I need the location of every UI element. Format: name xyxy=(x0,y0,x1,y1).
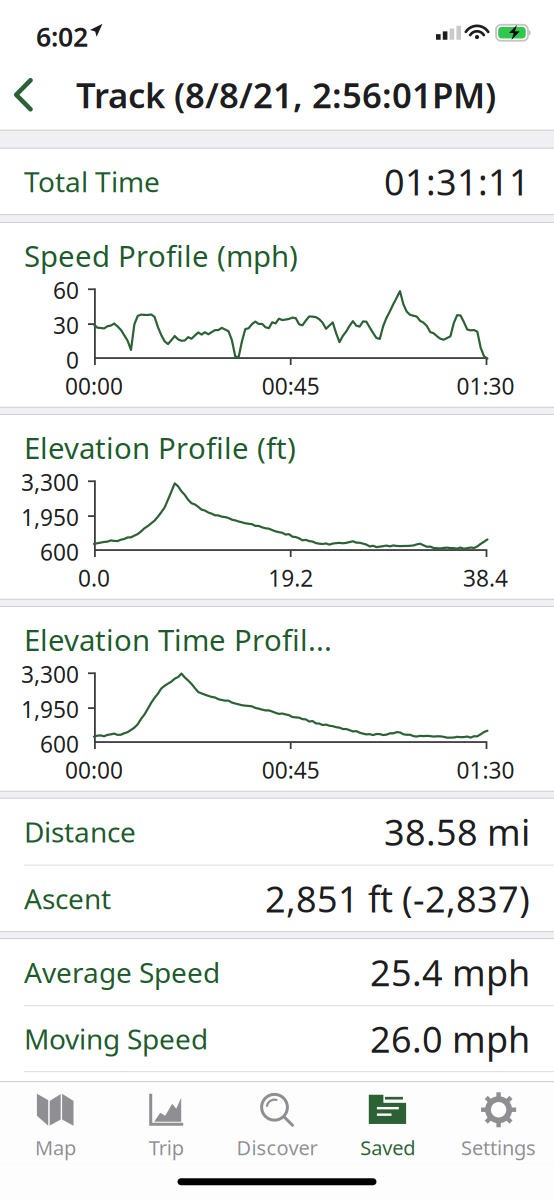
button[interactable]: Moving Speed xyxy=(0,1006,554,1071)
staticText: 00:45 xyxy=(262,755,320,785)
staticText: 00:00 xyxy=(65,755,123,785)
staticText: 600 xyxy=(40,537,79,567)
staticText: Distance xyxy=(24,813,136,850)
staticText: 01:31:11 xyxy=(384,158,530,205)
button[interactable]: Settings xyxy=(443,1082,554,1163)
staticText: 600 xyxy=(40,729,79,759)
staticText: 00:45 xyxy=(262,371,320,401)
staticText: 25.4 mph xyxy=(370,948,530,996)
staticText: 38.58 mi xyxy=(384,808,530,856)
staticText: Saved xyxy=(360,1134,415,1161)
button[interactable]: Trip xyxy=(111,1082,222,1163)
staticText: Trip xyxy=(149,1134,184,1161)
staticText: 30 xyxy=(53,310,79,340)
staticText: 01:30 xyxy=(456,371,514,401)
staticText: 3,300 xyxy=(21,467,79,497)
staticText: 00:00 xyxy=(65,371,123,401)
staticText: 38.4 xyxy=(463,563,508,593)
button[interactable]: Map xyxy=(0,1082,111,1163)
staticText: Ascent xyxy=(24,880,111,917)
button[interactable]: Discover xyxy=(222,1082,332,1163)
button[interactable]: Average Speed xyxy=(0,939,554,1005)
button[interactable]: Ascent xyxy=(0,866,554,931)
staticText: Speed Profile (mph) xyxy=(24,236,298,275)
staticText: 19.2 xyxy=(268,563,313,593)
staticText: Track (8/8/21, 2:56:01PM) xyxy=(76,72,496,118)
staticText: 60 xyxy=(53,275,79,305)
staticText: 0 xyxy=(66,345,79,375)
staticText: Elevation Time Profil... xyxy=(24,620,332,659)
button[interactable]: Total Time xyxy=(0,149,554,214)
staticText: Moving Speed xyxy=(24,1020,208,1057)
staticText: 26.0 mph xyxy=(370,1015,530,1063)
staticText: 2,851 ft (-2,837) xyxy=(265,875,530,922)
staticText: Elevation Profile (ft) xyxy=(24,428,296,467)
button[interactable]: Back xyxy=(0,62,49,127)
button[interactable]: Saved xyxy=(332,1082,443,1163)
button[interactable]: Distance xyxy=(0,799,554,865)
staticText: 1,950 xyxy=(21,502,79,532)
staticText: 6:02 xyxy=(36,19,88,54)
staticText: Total Time xyxy=(24,163,160,200)
staticText: Average Speed xyxy=(24,954,220,991)
staticText: 3,300 xyxy=(21,659,79,689)
staticText: Discover xyxy=(236,1134,317,1161)
staticText: Map xyxy=(35,1134,76,1161)
staticText: 01:30 xyxy=(456,755,514,785)
staticText: Settings xyxy=(461,1134,536,1161)
staticText: 0.0 xyxy=(78,563,110,593)
staticText: 1,950 xyxy=(21,694,79,724)
